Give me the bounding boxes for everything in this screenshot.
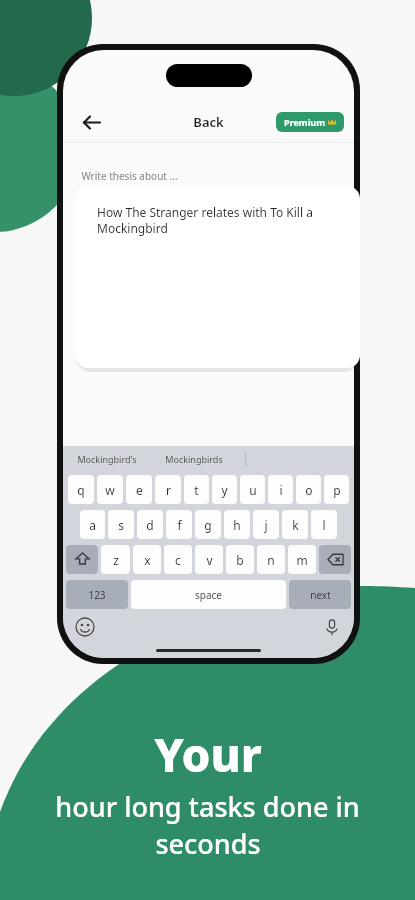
staticText: p (333, 482, 341, 498)
staticText: v (206, 552, 213, 568)
button[interactable]: next (289, 580, 351, 609)
button[interactable]: a (80, 510, 105, 539)
button[interactable]: space (131, 580, 286, 609)
staticText: a (89, 517, 96, 533)
staticText: q (77, 482, 85, 498)
button[interactable]: i (268, 475, 293, 504)
staticText: Back (193, 113, 224, 131)
button[interactable]: n (257, 545, 285, 574)
staticText: hour long tasks done in (55, 788, 360, 825)
button[interactable]: r (155, 475, 181, 504)
staticText: s (118, 517, 124, 533)
staticText: c (175, 552, 181, 568)
staticText: b (236, 552, 244, 568)
staticText: Mockingbird's (77, 453, 137, 465)
staticText: d (146, 517, 154, 533)
button[interactable]: h (224, 510, 250, 539)
button[interactable]: t (184, 475, 209, 504)
button[interactable]: Mockingbird's (77, 453, 143, 465)
button[interactable]: Premium (276, 112, 344, 132)
staticText: Your (154, 723, 262, 786)
button[interactable]: g (195, 510, 221, 539)
button[interactable]: l (311, 510, 337, 539)
button[interactable]: w (97, 475, 123, 504)
staticText: w (105, 482, 115, 498)
staticText: How The Stranger relates with To Kill a … (97, 204, 342, 237)
button[interactable]: o (296, 475, 321, 504)
staticText: space (195, 588, 222, 602)
button[interactable]: b (226, 545, 254, 574)
staticText: u (249, 482, 257, 498)
button[interactable]: j (253, 510, 279, 539)
staticText: l (322, 517, 326, 533)
button[interactable]: m (288, 545, 316, 574)
staticText: Mockingbirds (165, 453, 223, 465)
staticText: h (233, 517, 241, 533)
button[interactable]: Shift (66, 545, 98, 574)
staticText: 123 (88, 588, 106, 602)
staticText: j (264, 517, 268, 533)
button[interactable]: k (282, 510, 308, 539)
button[interactable]: c (164, 545, 192, 574)
staticText: seconds (155, 825, 261, 862)
button[interactable]: 123 (66, 580, 128, 609)
staticText: Premium (284, 116, 325, 128)
staticText: t (194, 482, 199, 498)
staticText: f (177, 517, 182, 533)
button[interactable]: f (166, 510, 192, 539)
staticText: k (292, 517, 299, 533)
staticText: o (305, 482, 313, 498)
button[interactable]: s (108, 510, 134, 539)
button[interactable]: e (126, 475, 152, 504)
button[interactable]: y (212, 475, 237, 504)
staticText: x (144, 552, 151, 568)
staticText: e (136, 482, 143, 498)
button[interactable]: z (101, 545, 130, 574)
button[interactable]: Back (75, 106, 107, 138)
button[interactable]: u (240, 475, 265, 504)
button[interactable]: Emoji (75, 617, 95, 637)
button[interactable]: Dictate (322, 617, 342, 637)
staticText: Write thesis about ... (81, 169, 178, 183)
button[interactable]: p (324, 475, 349, 504)
staticText: i (279, 482, 283, 498)
staticText: n (267, 552, 275, 568)
button[interactable]: Backspace (319, 545, 351, 574)
staticText: y (221, 482, 228, 498)
button[interactable]: d (137, 510, 163, 539)
staticText: m (296, 552, 308, 568)
staticText: g (204, 517, 212, 533)
button[interactable]: x (133, 545, 161, 574)
button[interactable]: q (68, 475, 94, 504)
staticText: z (113, 552, 119, 568)
button[interactable]: Back (193, 113, 224, 131)
staticText: next (310, 588, 331, 602)
staticText: r (166, 482, 171, 498)
button[interactable]: How The Stranger relates with To Kill a … (75, 186, 360, 368)
button[interactable]: v (195, 545, 223, 574)
button[interactable]: Mockingbirds (165, 453, 223, 465)
